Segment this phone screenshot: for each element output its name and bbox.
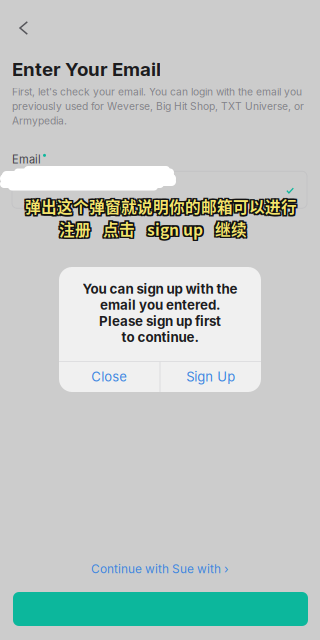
staticText: 注册 点击 sign up 继续 — [60, 219, 248, 242]
button[interactable]: Close — [59, 362, 160, 392]
staticText: 弹出这个弹窗就说明你的邮箱可以进行 — [24, 194, 296, 216]
staticText: 注册 点击 sign up 继续 — [58, 218, 246, 240]
staticText: 弹出这个弹窗就说明你的邮箱可以进行 — [24, 196, 296, 219]
staticText: 注册 点击 sign up 继续 — [60, 218, 248, 240]
staticText: 弹出这个弹窗就说明你的邮箱可以进行 — [24, 195, 296, 218]
button[interactable]: Continue with Sue with › — [0, 553, 320, 579]
staticText: 弹出这个弹窗就说明你的邮箱可以进行 — [25, 196, 297, 219]
staticText: 注册 点击 sign up 继续 — [58, 216, 246, 239]
staticText: 弹出这个弹窗就说明你的邮箱可以进行 — [26, 194, 298, 216]
staticText: 弹出这个弹窗就说明你的邮箱可以进行 — [25, 195, 297, 218]
staticText: Email — [12, 153, 41, 166]
staticText: 注册 点击 sign up 继续 — [59, 216, 247, 239]
staticText: 弹出这个弹窗就说明你的邮箱可以进行 — [26, 196, 298, 219]
staticText: Enter Your Email — [12, 58, 161, 81]
button[interactable]: Back — [0, 0, 43, 45]
staticText: Please sign up first — [99, 313, 221, 329]
staticText: Sign Up — [186, 369, 235, 385]
staticText: 注册 点击 sign up 继续 — [58, 219, 246, 242]
staticText: 注册 点击 sign up 继续 — [59, 218, 247, 240]
staticText: First, let's check your email. You can l… — [12, 86, 304, 127]
staticText: email you entered. — [100, 297, 220, 313]
staticText: 弹出这个弹窗就说明你的邮箱可以进行 — [25, 194, 297, 216]
staticText: You can sign up with the — [82, 281, 237, 297]
staticText: 注册 点击 sign up 继续 — [59, 219, 247, 242]
staticText: to continue. — [121, 329, 198, 345]
button[interactable]: Sign Up — [160, 362, 261, 392]
staticText: 弹出这个弹窗就说明你的邮箱可以进行 — [26, 195, 298, 218]
staticText: Continue with Sue with › — [91, 562, 229, 576]
staticText: 注册 点击 sign up 继续 — [60, 216, 248, 239]
button[interactable]: Next — [0, 579, 320, 640]
staticText: 弹出这个弹窗就说明你的邮箱可以进行 — [25, 195, 297, 218]
staticText: Close — [91, 369, 127, 385]
staticText: 注册 点击 sign up 继续 — [59, 218, 247, 240]
